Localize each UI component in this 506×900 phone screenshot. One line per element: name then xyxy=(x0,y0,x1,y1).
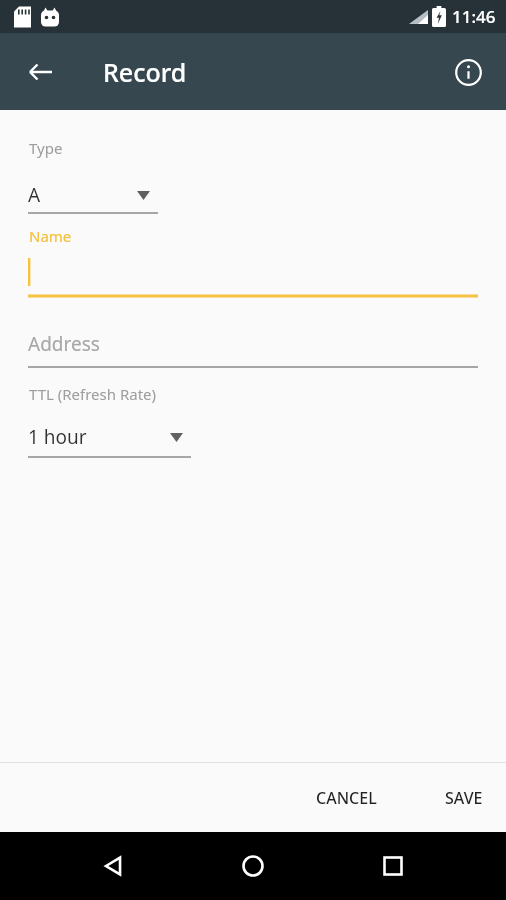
button[interactable]: Address xyxy=(28,326,478,368)
staticText: CANCEL xyxy=(316,787,377,809)
button[interactable]: Home xyxy=(228,841,278,891)
button[interactable]: CANCEL xyxy=(300,775,393,821)
button[interactable]: SAVE xyxy=(429,775,499,821)
staticText: Address xyxy=(28,331,100,357)
button[interactable]: Back xyxy=(14,45,68,99)
staticText: 1 hour xyxy=(28,424,87,450)
button[interactable]: Back xyxy=(88,841,138,891)
staticText: Type xyxy=(29,138,63,158)
staticText: Record xyxy=(103,55,187,89)
staticText: TTL (Refresh Rate) xyxy=(29,384,157,404)
button[interactable]: Recents xyxy=(368,841,418,891)
staticText: 11:46 xyxy=(452,5,496,28)
button[interactable]: Info xyxy=(442,46,494,98)
button[interactable]: A xyxy=(28,176,158,214)
staticText: A xyxy=(28,182,41,208)
staticText: SAVE xyxy=(445,787,483,809)
button[interactable]: 1 hour xyxy=(28,420,191,458)
staticText: Name xyxy=(29,226,72,246)
button[interactable] xyxy=(28,256,478,298)
